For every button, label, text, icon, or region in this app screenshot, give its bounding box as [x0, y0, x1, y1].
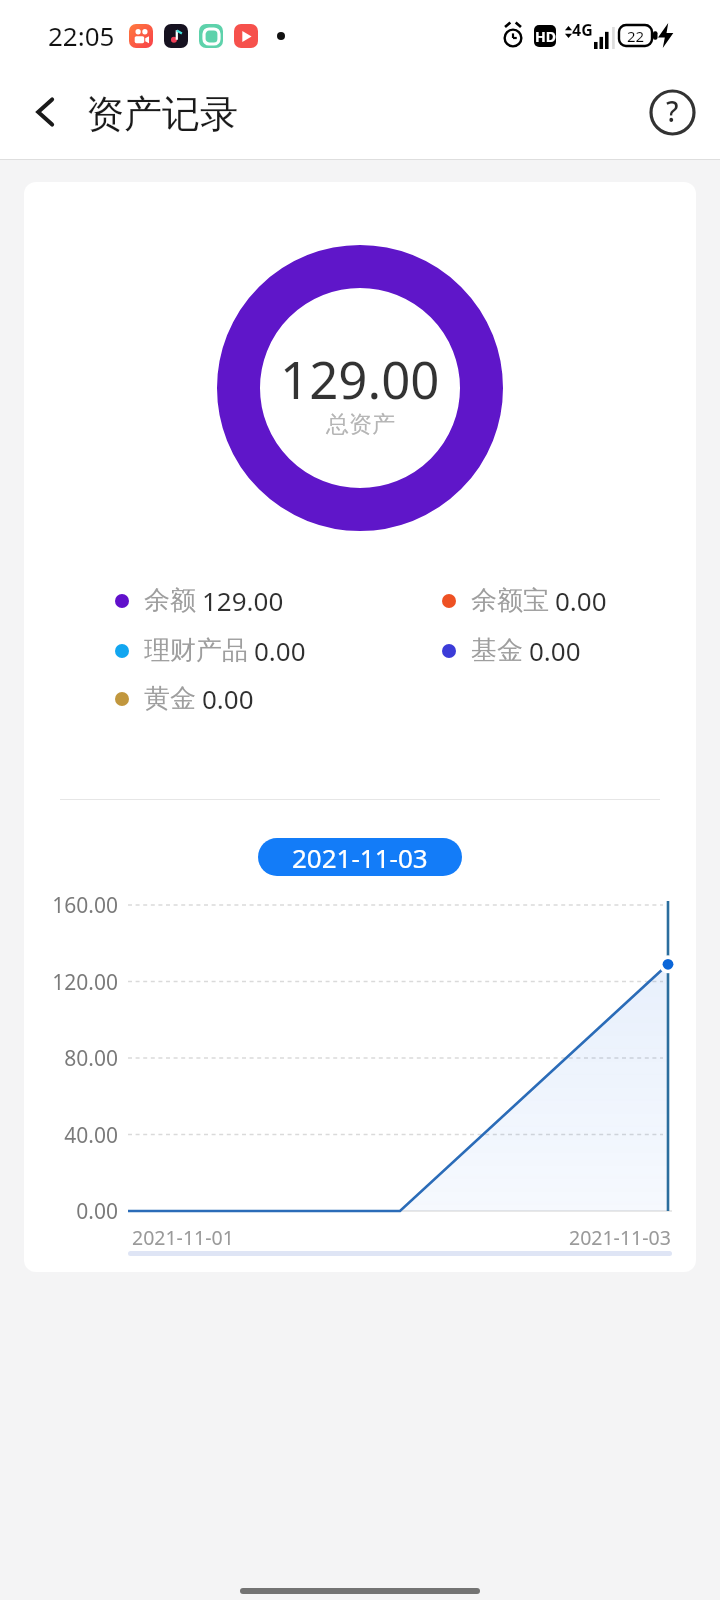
- staticText: 22:05: [48, 18, 115, 53]
- staticText: 0.00: [254, 633, 306, 668]
- staticText: 2021-11-03: [292, 840, 428, 875]
- button[interactable]: Help: [645, 85, 699, 139]
- button[interactable]: 基金: [442, 633, 581, 668]
- staticText: 余额宝: [471, 584, 549, 617]
- staticText: 129.00: [280, 344, 440, 413]
- staticText: HD: [535, 27, 556, 46]
- staticText: 0.00: [529, 633, 581, 668]
- staticText: 资产记录: [86, 90, 238, 138]
- staticText: ?: [666, 92, 679, 130]
- staticText: 2021-11-01: [132, 1224, 234, 1251]
- staticText: 22: [627, 26, 645, 46]
- staticText: 2021-11-03: [569, 1224, 671, 1251]
- button[interactable]: Back: [18, 84, 74, 140]
- staticText: 理财产品: [144, 634, 248, 667]
- button[interactable]: 余额宝: [442, 583, 607, 618]
- button[interactable]: 理财产品: [115, 633, 306, 668]
- button[interactable]: 余额: [115, 583, 284, 618]
- staticText: 4G: [572, 19, 593, 41]
- staticText: 0.00: [26, 1197, 118, 1226]
- staticText: 0.00: [202, 681, 254, 716]
- staticText: 余额: [144, 584, 196, 617]
- staticText: 基金: [471, 634, 523, 667]
- button[interactable]: 2021-11-03: [258, 838, 462, 876]
- staticText: 0.00: [555, 583, 607, 618]
- button[interactable]: 黄金: [115, 681, 254, 716]
- staticText: 40.00: [26, 1121, 118, 1150]
- staticText: 80.00: [26, 1044, 118, 1073]
- staticText: 129.00: [202, 583, 284, 618]
- staticText: 120.00: [26, 968, 118, 997]
- staticText: 160.00: [26, 891, 118, 920]
- staticText: 黄金: [144, 682, 196, 715]
- staticText: 总资产: [326, 410, 395, 439]
